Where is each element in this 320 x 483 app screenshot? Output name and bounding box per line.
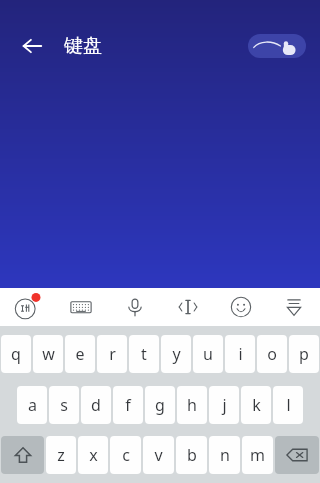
button[interactable]: u xyxy=(193,335,223,373)
button[interactable]: d xyxy=(81,386,111,424)
staticText: x xyxy=(89,444,98,466)
button[interactable]: k xyxy=(241,386,271,424)
button[interactable]: y xyxy=(161,335,191,373)
staticText: s xyxy=(60,394,68,416)
button[interactable]: Input method xyxy=(0,288,54,326)
button[interactable]: e xyxy=(65,335,95,373)
button[interactable]: q xyxy=(1,335,31,373)
staticText: h xyxy=(187,394,197,416)
staticText: q xyxy=(11,343,21,365)
button[interactable]: Hide keyboard xyxy=(267,288,320,326)
button[interactable]: b xyxy=(176,436,207,474)
button[interactable]: n xyxy=(209,436,240,474)
button[interactable]: m xyxy=(242,436,273,474)
button[interactable]: p xyxy=(289,335,319,373)
button[interactable]: Shift xyxy=(1,436,44,474)
staticText: z xyxy=(57,444,65,466)
button[interactable]: Back xyxy=(10,24,54,68)
button[interactable]: l xyxy=(273,386,303,424)
button[interactable]: w xyxy=(33,335,63,373)
staticText: a xyxy=(28,394,37,416)
button[interactable]: Emoji xyxy=(214,288,267,326)
button[interactable]: g xyxy=(145,386,175,424)
staticText: e xyxy=(75,343,85,365)
button[interactable]: j xyxy=(209,386,239,424)
button[interactable]: r xyxy=(97,335,127,373)
staticText: k xyxy=(252,394,261,416)
button[interactable]: s xyxy=(49,386,79,424)
staticText: n xyxy=(220,444,230,466)
button[interactable]: Edit cursor xyxy=(161,288,214,326)
staticText: u xyxy=(203,343,213,365)
staticText: p xyxy=(299,343,309,365)
button[interactable]: Voice input xyxy=(108,288,161,326)
button[interactable]: a xyxy=(17,386,47,424)
button[interactable]: Keyboard layout xyxy=(54,288,108,326)
button[interactable]: z xyxy=(46,436,76,474)
button[interactable]: o xyxy=(257,335,287,373)
button[interactable]: h xyxy=(177,386,207,424)
staticText: t xyxy=(141,343,147,365)
staticText: o xyxy=(267,343,277,365)
staticText: r xyxy=(109,343,116,365)
staticText: y xyxy=(172,343,181,365)
staticText: w xyxy=(42,343,55,365)
button[interactable]: i xyxy=(225,335,255,373)
staticText: i xyxy=(238,343,243,365)
staticText: m xyxy=(250,444,265,466)
staticText: c xyxy=(122,444,130,466)
button[interactable]: f xyxy=(113,386,143,424)
button[interactable]: t xyxy=(129,335,159,373)
button[interactable]: v xyxy=(143,436,174,474)
button[interactable]: Backspace xyxy=(275,436,319,474)
staticText: b xyxy=(187,444,197,466)
button[interactable]: Swipe gesture xyxy=(248,34,306,58)
staticText: g xyxy=(155,394,165,416)
button[interactable]: c xyxy=(110,436,141,474)
staticText: f xyxy=(125,394,131,416)
staticText: j xyxy=(222,394,227,416)
staticText: d xyxy=(91,394,101,416)
staticText: l xyxy=(286,394,291,416)
staticText: v xyxy=(154,444,163,466)
button[interactable]: x xyxy=(78,436,108,474)
staticText: 键盘 xyxy=(64,34,102,58)
